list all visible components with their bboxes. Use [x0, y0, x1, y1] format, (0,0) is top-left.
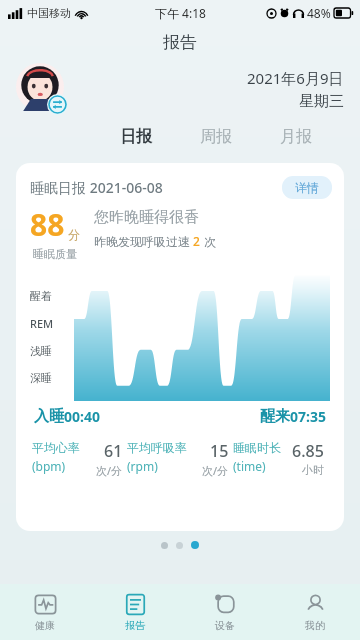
- staticText: 次/分: [202, 463, 229, 478]
- staticText: 睡眠日报 2021-06-08: [30, 178, 163, 197]
- staticText: 小时: [302, 463, 324, 477]
- staticText: 88: [30, 204, 65, 245]
- button[interactable]: 周报: [176, 120, 256, 154]
- staticText: 分: [68, 227, 80, 242]
- staticText: 入睡: [34, 407, 64, 426]
- staticText: 详情: [295, 180, 319, 195]
- staticText: 平均心率: [32, 440, 80, 455]
- staticText: 00:40: [64, 407, 100, 426]
- staticText: 醒来: [260, 407, 290, 426]
- staticText: 深睡: [30, 371, 52, 385]
- button[interactable]: Switch user profile: [16, 63, 68, 115]
- staticText: 2: [190, 233, 204, 249]
- staticText: 报告: [163, 32, 197, 53]
- staticText: 睡眠质量: [33, 247, 77, 261]
- staticText: 月报: [280, 127, 312, 147]
- staticText: 昨晚发现呼吸过速: [94, 234, 190, 249]
- button[interactable]: 健康: [0, 584, 90, 640]
- staticText: 周报: [200, 127, 232, 147]
- button[interactable]: 详情: [282, 176, 332, 199]
- staticText: 15: [210, 440, 229, 462]
- staticText: 中国移动: [27, 6, 71, 20]
- staticText: 设备: [215, 619, 235, 632]
- staticText: 浅睡: [30, 344, 52, 358]
- staticText: 2021年6月9日: [247, 68, 344, 88]
- staticText: 07:35: [290, 407, 326, 426]
- staticText: 下午 4:18: [155, 5, 206, 21]
- staticText: 星期三: [299, 92, 344, 111]
- staticText: 次/分: [96, 463, 123, 478]
- button[interactable]: 睡眠日报 2021-06-08: [16, 163, 344, 531]
- staticText: 醒着: [30, 289, 52, 303]
- staticText: 平均呼吸率: [127, 440, 187, 455]
- staticText: 6.85: [292, 440, 324, 462]
- button[interactable]: 报告: [90, 584, 180, 640]
- staticText: 健康: [35, 619, 55, 632]
- staticText: 您昨晚睡得很香: [94, 208, 199, 227]
- staticText: (bpm): [32, 458, 66, 474]
- staticText: 48%: [307, 5, 331, 21]
- staticText: REM: [30, 316, 54, 331]
- staticText: (rpm): [127, 458, 158, 474]
- button[interactable]: 我的: [270, 584, 360, 640]
- button[interactable]: 月报: [256, 120, 336, 154]
- staticText: 61: [104, 440, 123, 462]
- staticText: 次: [204, 234, 216, 249]
- button[interactable]: 日报: [96, 120, 176, 154]
- button[interactable]: 设备: [180, 584, 270, 640]
- staticText: 我的: [305, 619, 325, 632]
- staticText: (time): [233, 458, 266, 474]
- staticText: 日报: [120, 127, 152, 147]
- staticText: 报告: [125, 619, 145, 632]
- staticText: 睡眠时长: [233, 440, 281, 455]
